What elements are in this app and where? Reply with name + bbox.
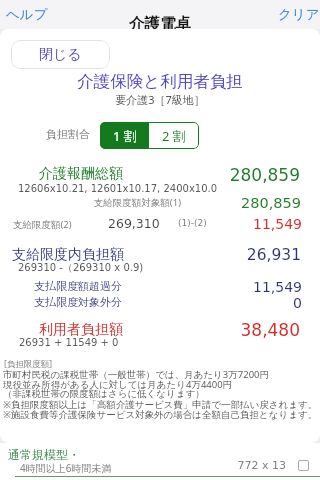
staticText: 269310 -（269310 x 0.9) <box>18 261 144 274</box>
staticText: 支払限度対象外分 <box>0 295 122 309</box>
button[interactable]: ヘルプ <box>0 0 62 29</box>
staticText: 要介護3［7級地］ <box>10 92 310 107</box>
staticText: 支払限度額超過分 <box>0 279 122 293</box>
staticText: 772 x 13 <box>66 459 286 472</box>
staticText: 12606x10.21, 12601x10.17, 2400x10.0 <box>18 183 218 195</box>
staticText: 支給限度額(2) <box>13 218 72 231</box>
staticText: 支給限度内負担額 <box>0 246 124 264</box>
staticText: 11,549 <box>82 216 302 232</box>
staticText: 負担割合 <box>0 127 90 141</box>
staticText: 4時間以上6時間未満 <box>20 461 112 475</box>
staticText: 市町村民税の課税世帯（一般世帯）では、月あたり3万7200円 <box>3 368 270 381</box>
staticText: 通常規模型・ <box>8 447 80 462</box>
staticText: 2 割 <box>162 127 186 145</box>
staticText: 26931 + 11549 + 0 <box>19 337 119 349</box>
staticText: （非課税世帯の限度額はさらに低くなります） <box>3 388 205 400</box>
staticText: 269,310 <box>108 216 160 231</box>
staticText: (1)-(2) <box>178 218 207 228</box>
staticText: 280,859 <box>80 165 300 185</box>
staticText: ※負担限度額以上は「高額介護サービス費」申請で一部払い戻されます。 <box>3 398 318 411</box>
button[interactable]: クリア <box>258 0 320 29</box>
staticText: 閉じる <box>39 46 82 64</box>
staticText: 26,931 <box>81 246 301 264</box>
staticText: ヘルプ <box>6 6 48 23</box>
staticText: 介護電卓 <box>10 14 310 34</box>
button[interactable]: 1 割 <box>100 122 149 149</box>
staticText: 支給限度額対象額(1) <box>0 196 181 209</box>
staticText: 現役並み所得がある人に対しては月あたり4万4400円 <box>3 378 233 391</box>
staticText: 利用者負担額 <box>0 321 123 339</box>
staticText: 1 割 <box>113 127 137 145</box>
staticText: 0 <box>82 295 302 311</box>
staticText: 280,859 <box>81 195 301 212</box>
staticText: 介護報酬総額 <box>0 165 123 183</box>
button[interactable]: Expand <box>298 460 309 471</box>
button[interactable]: 閉じる <box>11 40 110 69</box>
staticText: [負担限度額] <box>4 358 53 370</box>
staticText: ※施設食費等介護保険サービス対象外の場合は全額自己負担となります。 <box>3 408 318 421</box>
button[interactable]: 2 割 <box>149 122 199 149</box>
staticText: クリア <box>278 6 320 23</box>
staticText: 38,480 <box>80 320 300 340</box>
staticText: 11,549 <box>82 279 302 295</box>
staticText: 介護保険と利用者負担 <box>10 71 310 92</box>
